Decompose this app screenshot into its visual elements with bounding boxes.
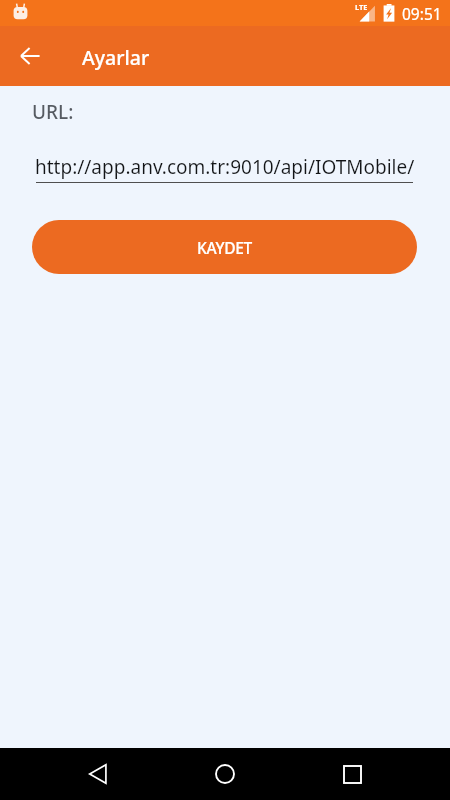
staticText: URL: [32,99,74,125]
staticText: Ayarlar [82,44,150,71]
button[interactable]: Back [74,750,122,798]
button[interactable]: Recents [328,750,376,798]
button[interactable]: Home [201,750,249,798]
staticText: http://app.anv.com.tr:9010/api/IOTMobile… [35,154,415,180]
button[interactable]: KAYDET [32,220,417,274]
button[interactable]: http://app.anv.com.tr:9010/api/IOTMobile… [0,126,450,183]
staticText: KAYDET [197,237,252,258]
button[interactable]: Back [6,32,54,80]
staticText: LTE [355,2,368,12]
staticText: 09:51 [402,3,442,24]
